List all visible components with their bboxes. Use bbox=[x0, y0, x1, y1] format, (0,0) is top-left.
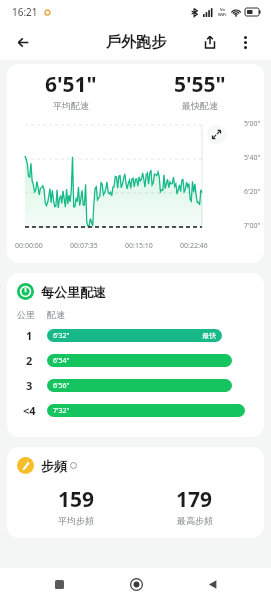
button[interactable]: Share bbox=[196, 28, 224, 56]
staticText: 6'20" bbox=[244, 187, 261, 197]
staticText: 179 bbox=[176, 485, 213, 514]
staticText: 6'54" bbox=[53, 356, 70, 366]
staticText: 每公里配速 bbox=[41, 284, 106, 300]
button[interactable]: Home bbox=[119, 568, 153, 600]
staticText: 7'00" bbox=[244, 221, 261, 231]
staticText: 6'56" bbox=[53, 381, 70, 391]
staticText: 5'55" bbox=[174, 70, 226, 99]
staticText: WiFi bbox=[218, 12, 227, 17]
staticText: 平均配速 bbox=[53, 100, 89, 111]
staticText: 最快配速 bbox=[182, 100, 218, 111]
staticText: 6'51" bbox=[45, 70, 97, 99]
button[interactable]: Back bbox=[195, 568, 229, 600]
button[interactable]: Expand chart bbox=[207, 125, 226, 144]
button[interactable]: More options bbox=[231, 28, 259, 56]
staticText: 6'32" bbox=[53, 331, 70, 341]
staticText: 159 bbox=[58, 485, 95, 514]
staticText: 00:07:35 bbox=[70, 241, 98, 251]
staticText: Vo bbox=[220, 7, 226, 12]
button[interactable]: 每公里配速 bbox=[7, 273, 264, 437]
staticText: 公里 bbox=[17, 309, 35, 320]
staticText: 步頻 bbox=[41, 458, 67, 474]
staticText: 戶外跑步 bbox=[106, 33, 166, 52]
button[interactable]: 步頻 bbox=[7, 447, 264, 538]
staticText: 7'32" bbox=[53, 406, 70, 416]
staticText: 3 bbox=[26, 378, 33, 393]
staticText: 配速 bbox=[47, 309, 65, 320]
staticText: 16:21 bbox=[12, 5, 38, 19]
button[interactable]: 6'51" bbox=[7, 64, 264, 263]
staticText: 5'40" bbox=[244, 153, 261, 163]
staticText: 最快 bbox=[202, 331, 216, 340]
staticText: <4 bbox=[23, 403, 36, 418]
staticText: 00:00:00 bbox=[15, 241, 43, 251]
staticText: 最高步頻 bbox=[177, 515, 213, 526]
button[interactable]: Recent apps bbox=[42, 568, 76, 600]
staticText: 00:22:46 bbox=[180, 241, 208, 251]
staticText: 5'00" bbox=[244, 119, 261, 129]
button[interactable]: Back bbox=[8, 27, 38, 57]
staticText: 平均步頻 bbox=[58, 515, 94, 526]
staticText: 2 bbox=[26, 353, 33, 368]
staticText: 1 bbox=[26, 328, 33, 343]
staticText: 00:15:10 bbox=[125, 241, 153, 251]
